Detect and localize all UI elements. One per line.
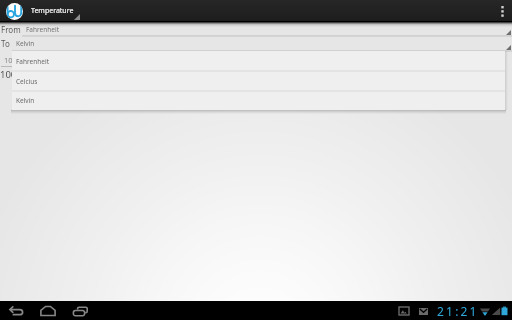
button[interactable]: App icon (6, 3, 23, 20)
staticText: 10 (4, 55, 13, 65)
staticText: From (1, 24, 21, 35)
button[interactable]: Fahrenheit (22, 23, 512, 36)
button[interactable]: Home (36, 301, 60, 320)
button[interactable]: Kelvin (12, 36, 512, 51)
staticText: Temperature (31, 6, 74, 16)
button[interactable]: Celcius (12, 71, 505, 91)
staticText: Fahrenheit (16, 57, 49, 66)
staticText: Celcius (16, 77, 38, 86)
staticText: 21:21 (437, 303, 479, 319)
button[interactable]: Kelvin (12, 91, 505, 110)
staticText: Kelvin (16, 96, 35, 105)
button[interactable]: Recent apps (65, 301, 89, 320)
button[interactable]: Fahrenheit (12, 51, 505, 71)
staticText: 100 (0, 68, 17, 81)
staticText: Fahrenheit (26, 25, 59, 34)
staticText: Kelvin (16, 39, 35, 48)
button[interactable]: Back (6, 301, 30, 320)
button[interactable]: More options (492, 0, 512, 23)
staticText: To (1, 38, 10, 49)
